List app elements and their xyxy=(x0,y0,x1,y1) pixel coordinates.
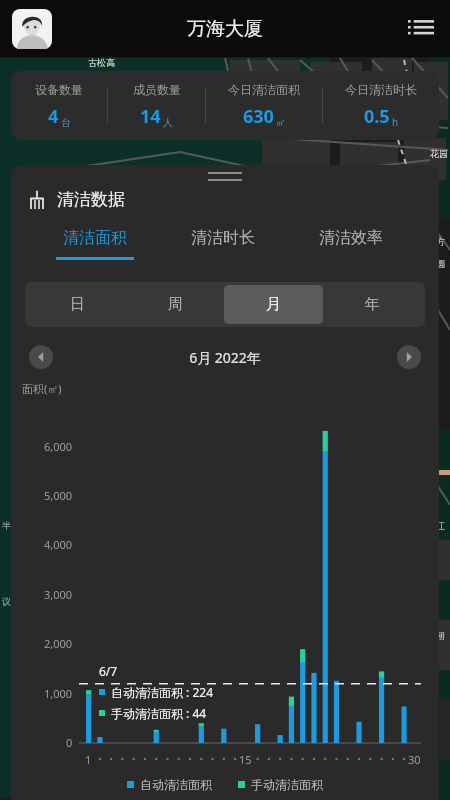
staticText: ㎡ xyxy=(276,116,286,129)
staticText: 3,000 xyxy=(44,587,73,602)
button[interactable]: Menu xyxy=(404,12,438,46)
staticText: 30 xyxy=(408,752,421,767)
staticText: 清洁效率 xyxy=(319,228,383,248)
staticText: 2,000 xyxy=(44,636,73,651)
button[interactable]: 月 xyxy=(224,285,323,324)
staticText: 手动清洁面积 : 44 xyxy=(111,705,207,721)
button[interactable]: 今日清洁面积 xyxy=(206,82,322,129)
staticText: 1 xyxy=(85,752,92,767)
staticText: 1,000 xyxy=(44,686,73,701)
staticText: 周 xyxy=(168,295,183,314)
staticText: 花园 xyxy=(430,148,448,159)
staticText: 成员数量 xyxy=(133,82,181,97)
button[interactable]: 清洁面积 xyxy=(31,228,159,260)
button[interactable]: 成员数量 xyxy=(108,82,205,129)
button[interactable]: 今日清洁时长 xyxy=(323,82,439,129)
button[interactable]: 设备数量 xyxy=(11,82,107,129)
button[interactable]: 自动清洁面积 xyxy=(127,777,212,792)
staticText: 自动清洁面积 xyxy=(140,777,212,792)
staticText: h xyxy=(392,115,399,129)
button[interactable]: 清洁数据 xyxy=(27,189,125,210)
staticText: 4,000 xyxy=(44,537,73,552)
button[interactable]: 清洁效率 xyxy=(287,228,415,260)
staticText: 0.5 xyxy=(364,104,390,129)
staticText: 设备数量 xyxy=(35,82,83,97)
staticText: 古松高 xyxy=(88,57,115,68)
staticText: 清洁时长 xyxy=(191,228,255,248)
staticText: 4 xyxy=(48,104,59,129)
staticText: 手动清洁面积 xyxy=(251,777,323,792)
staticText: 圆 xyxy=(436,258,445,269)
staticText: 0 xyxy=(66,735,73,750)
staticText: 6,000 xyxy=(44,439,73,454)
button[interactable]: 日 xyxy=(28,285,126,324)
staticText: 14 xyxy=(140,104,161,129)
staticText: 日 xyxy=(70,295,85,314)
staticText: 自动清洁面积 : 224 xyxy=(111,684,214,700)
staticText: 今日清洁面积 xyxy=(228,82,300,97)
staticText: 方 xyxy=(436,236,445,247)
staticText: 年 xyxy=(365,295,380,314)
staticText: 清洁面积 xyxy=(63,228,127,248)
staticText: 人 xyxy=(163,116,173,129)
button[interactable]: 手动清洁面积 xyxy=(238,777,323,792)
staticText: 议 xyxy=(2,596,11,607)
staticText: 今日清洁时长 xyxy=(345,82,417,97)
staticText: 江 xyxy=(436,520,445,531)
button[interactable]: Profile xyxy=(12,9,52,49)
staticText: 半 xyxy=(2,520,11,531)
staticText: 清洁数据 xyxy=(57,189,125,210)
button[interactable]: 周 xyxy=(126,285,224,324)
button[interactable]: Previous month xyxy=(29,345,53,369)
staticText: 月 xyxy=(266,295,281,314)
staticText: 630 xyxy=(243,104,274,129)
staticText: 6/7 xyxy=(99,663,118,679)
staticText: 万海大厦 xyxy=(187,17,263,41)
staticText: 朝 xyxy=(436,630,445,641)
staticText: 6月 2022年 xyxy=(53,348,397,367)
staticText: 台 xyxy=(61,116,71,129)
staticText: 15 xyxy=(239,752,252,767)
staticText: 5,000 xyxy=(44,488,73,503)
button[interactable]: 清洁时长 xyxy=(159,228,287,260)
button[interactable]: 年 xyxy=(323,285,422,324)
button[interactable]: Next month xyxy=(397,345,421,369)
staticText: 面积(㎡) xyxy=(22,381,62,396)
